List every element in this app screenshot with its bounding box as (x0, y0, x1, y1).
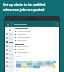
button[interactable]: Map of job locations (15, 58, 58, 71)
button[interactable] (6, 37, 13, 39)
button[interactable] (6, 28, 13, 32)
button[interactable] (6, 45, 13, 47)
button[interactable] (10, 22, 54, 26)
button[interactable] (6, 33, 13, 35)
button[interactable]: Menu (6, 23, 9, 26)
button[interactable]: More options (55, 23, 58, 26)
button[interactable] (6, 61, 13, 63)
button[interactable] (6, 65, 13, 67)
button[interactable] (6, 49, 13, 51)
button[interactable] (6, 53, 13, 55)
staticText: Set up alerts to be notified (3, 3, 46, 7)
button[interactable] (6, 57, 13, 59)
button[interactable] (6, 41, 13, 43)
staticText: when new jobs are posted (3, 8, 45, 12)
